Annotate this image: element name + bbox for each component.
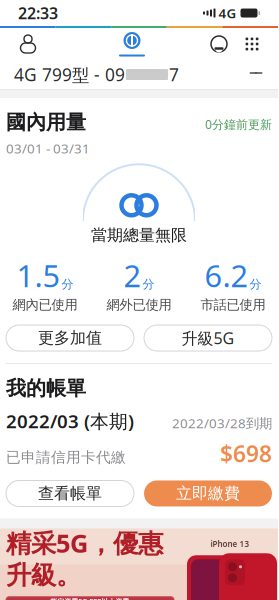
- button[interactable]: 帳號: [0, 29, 56, 59]
- staticText: 22:33: [18, 2, 58, 24]
- staticText: iPhone 13: [210, 539, 249, 549]
- button[interactable]: 升級5G: [144, 325, 272, 351]
- button[interactable]: 更多加值: [6, 325, 134, 351]
- button[interactable]: 更多功能: [242, 34, 262, 54]
- staticText: 2022/03/28到期: [172, 414, 272, 432]
- staticText: 我的帳單: [6, 376, 86, 401]
- staticText: 網外已使用: [106, 297, 171, 313]
- staticText: 當期總量無限: [91, 225, 187, 245]
- staticText: 立即繳費: [176, 484, 240, 503]
- staticText: 分: [249, 277, 261, 292]
- button[interactable]: 查看帳單: [6, 480, 134, 506]
- button[interactable]: 首頁: [102, 28, 162, 60]
- staticText: 6.2: [204, 255, 248, 296]
- staticText: 已申請信用卡代繳: [6, 448, 126, 466]
- button[interactable]: 立即繳費: [144, 480, 272, 506]
- staticText: 03/01 - 03/31: [6, 140, 90, 157]
- staticText: 網內已使用: [12, 297, 77, 313]
- staticText: 2: [123, 255, 141, 296]
- staticText: 指定資費5G 999以上資費: [50, 597, 129, 600]
- staticText: 分: [61, 277, 73, 292]
- button[interactable]: 4G 799型 - 09: [0, 60, 278, 89]
- staticText: 查看帳單: [38, 484, 102, 503]
- staticText: 更多加值: [38, 328, 102, 348]
- staticText: $698: [220, 438, 272, 468]
- staticText: 0分鐘前更新: [205, 116, 272, 132]
- staticText: 國內用量: [6, 110, 86, 135]
- staticText: 分: [142, 277, 154, 292]
- staticText: 4G: [218, 4, 236, 22]
- staticText: 7: [169, 63, 179, 86]
- staticText: 1.5: [16, 255, 60, 296]
- button[interactable]: 客服: [208, 33, 230, 55]
- button[interactable]: 精采5G優惠升級廣告: [0, 528, 279, 600]
- staticText: 升級5G: [181, 327, 234, 349]
- staticText: 2022/03 (本期): [6, 409, 134, 433]
- button[interactable]: 0分鐘前更新: [205, 116, 272, 132]
- staticText: 4G 799型 - 09: [14, 63, 125, 86]
- staticText: 市話已使用: [200, 297, 265, 313]
- staticText: 精采5G，優惠升級。: [6, 526, 163, 591]
